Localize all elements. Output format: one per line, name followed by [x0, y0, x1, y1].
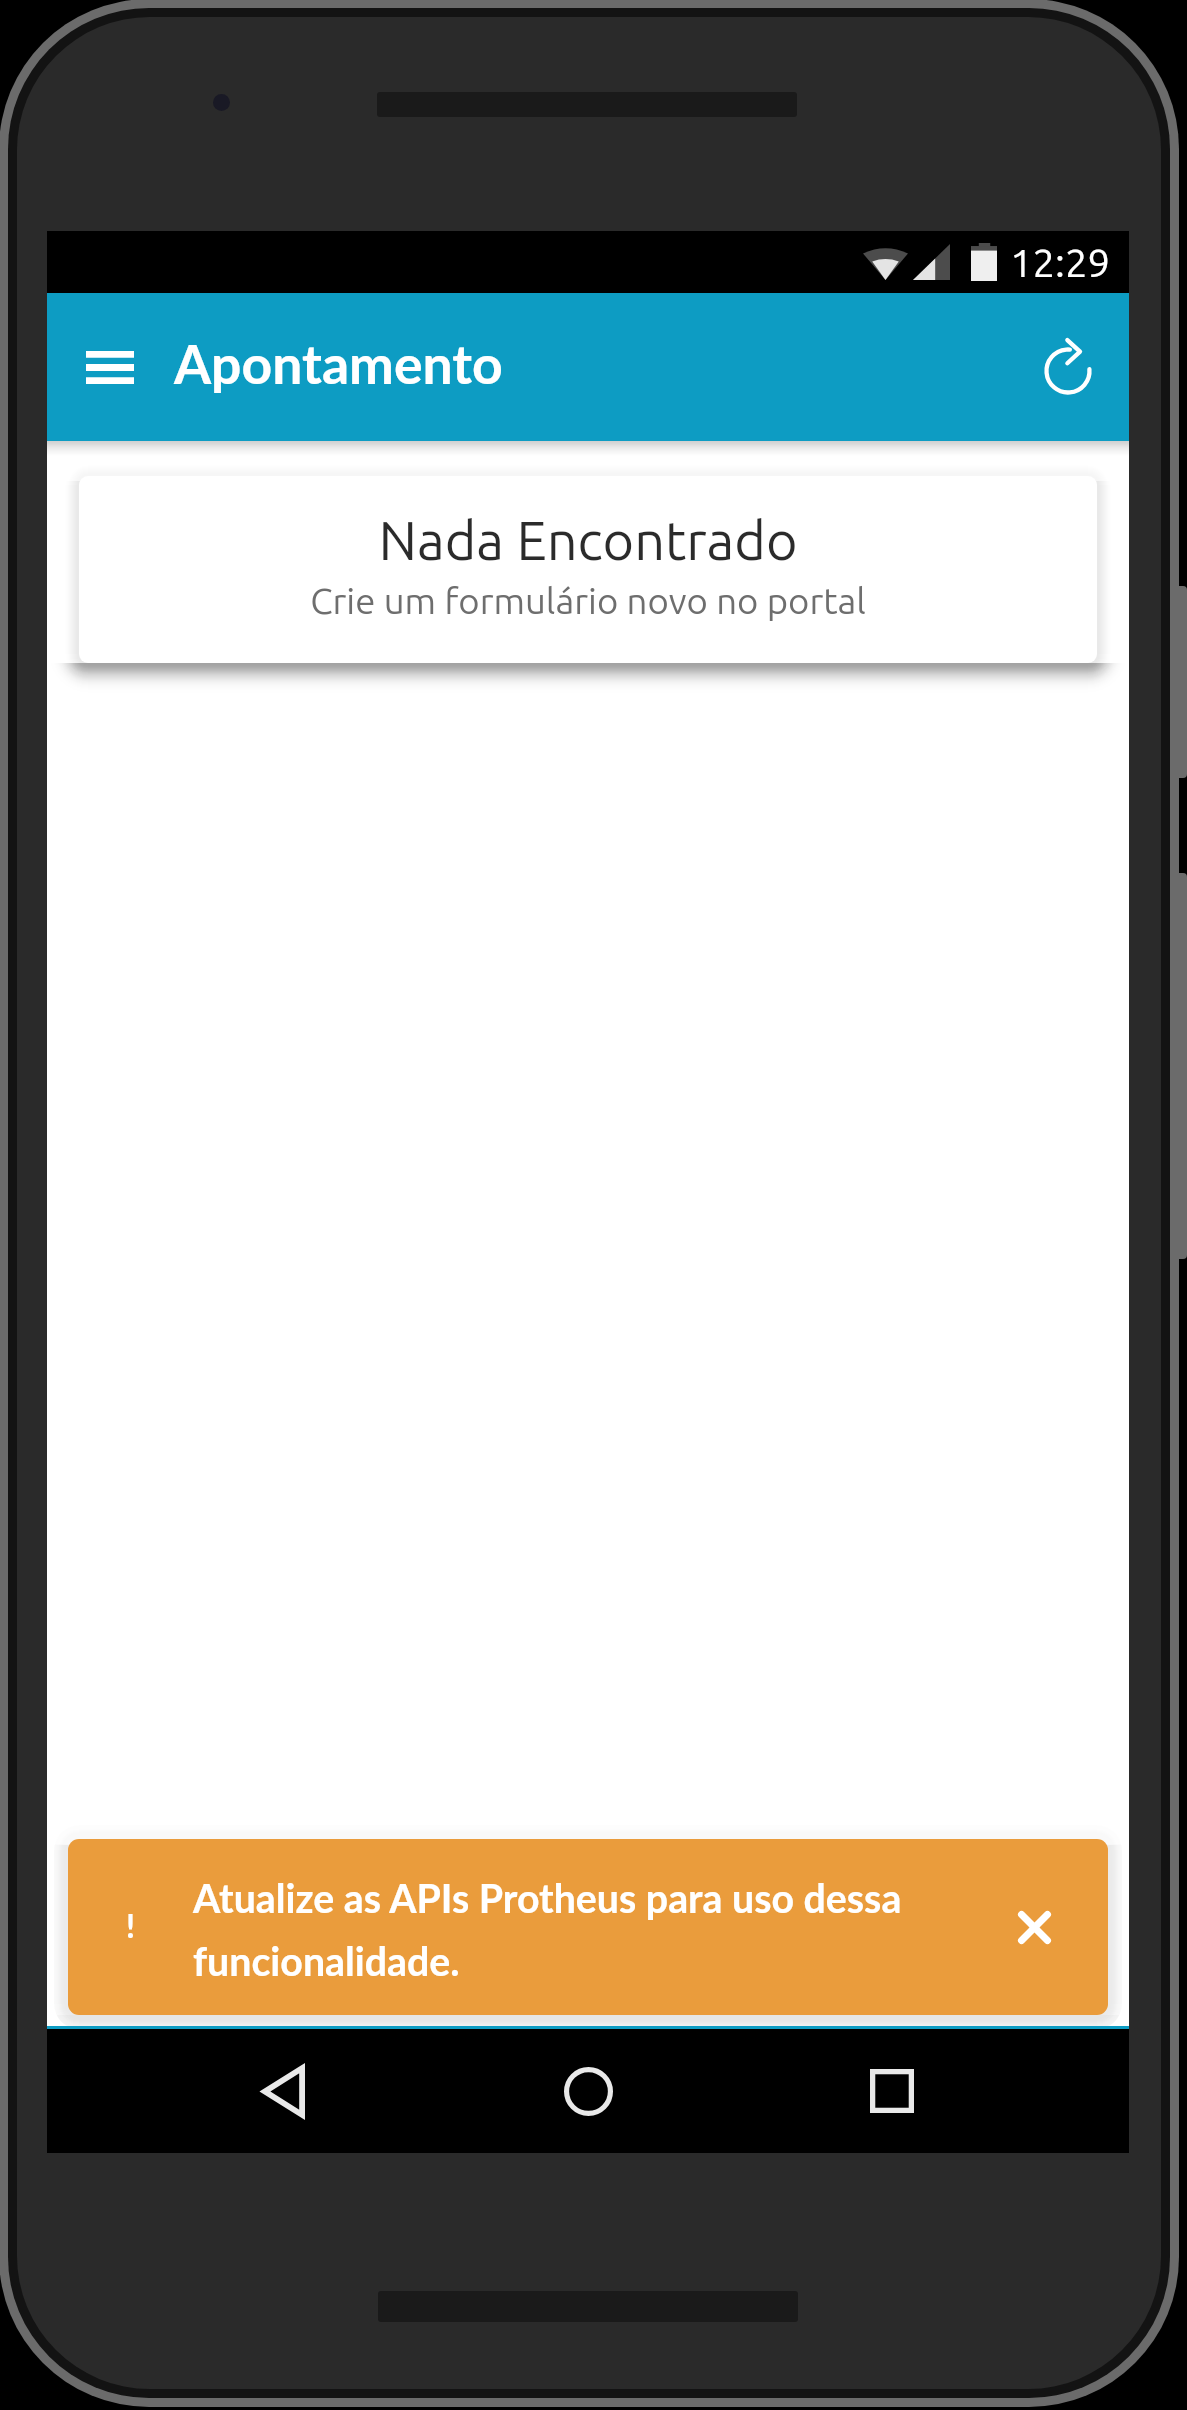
- button[interactable]: Recent apps: [842, 2029, 942, 2153]
- staticText: !: [126, 1906, 135, 1944]
- staticText: Apontamento: [174, 331, 503, 395]
- staticText: Atualize as APIs Protheus para uso dessa…: [193, 1874, 1008, 1984]
- staticText: Crie um formulário novo no portal: [310, 580, 866, 621]
- button[interactable]: !: [68, 1839, 1108, 2015]
- button[interactable]: Home: [538, 2029, 638, 2153]
- staticText: 12:29: [1010, 240, 1111, 285]
- button[interactable]: Back: [233, 2029, 333, 2153]
- button[interactable]: Dismiss message: [995, 1888, 1073, 1966]
- button[interactable]: Open navigation menu: [64, 315, 156, 419]
- button[interactable]: Nada Encontrado: [79, 476, 1097, 663]
- button[interactable]: Refresh: [1018, 317, 1118, 417]
- staticText: Nada Encontrado: [378, 510, 798, 571]
